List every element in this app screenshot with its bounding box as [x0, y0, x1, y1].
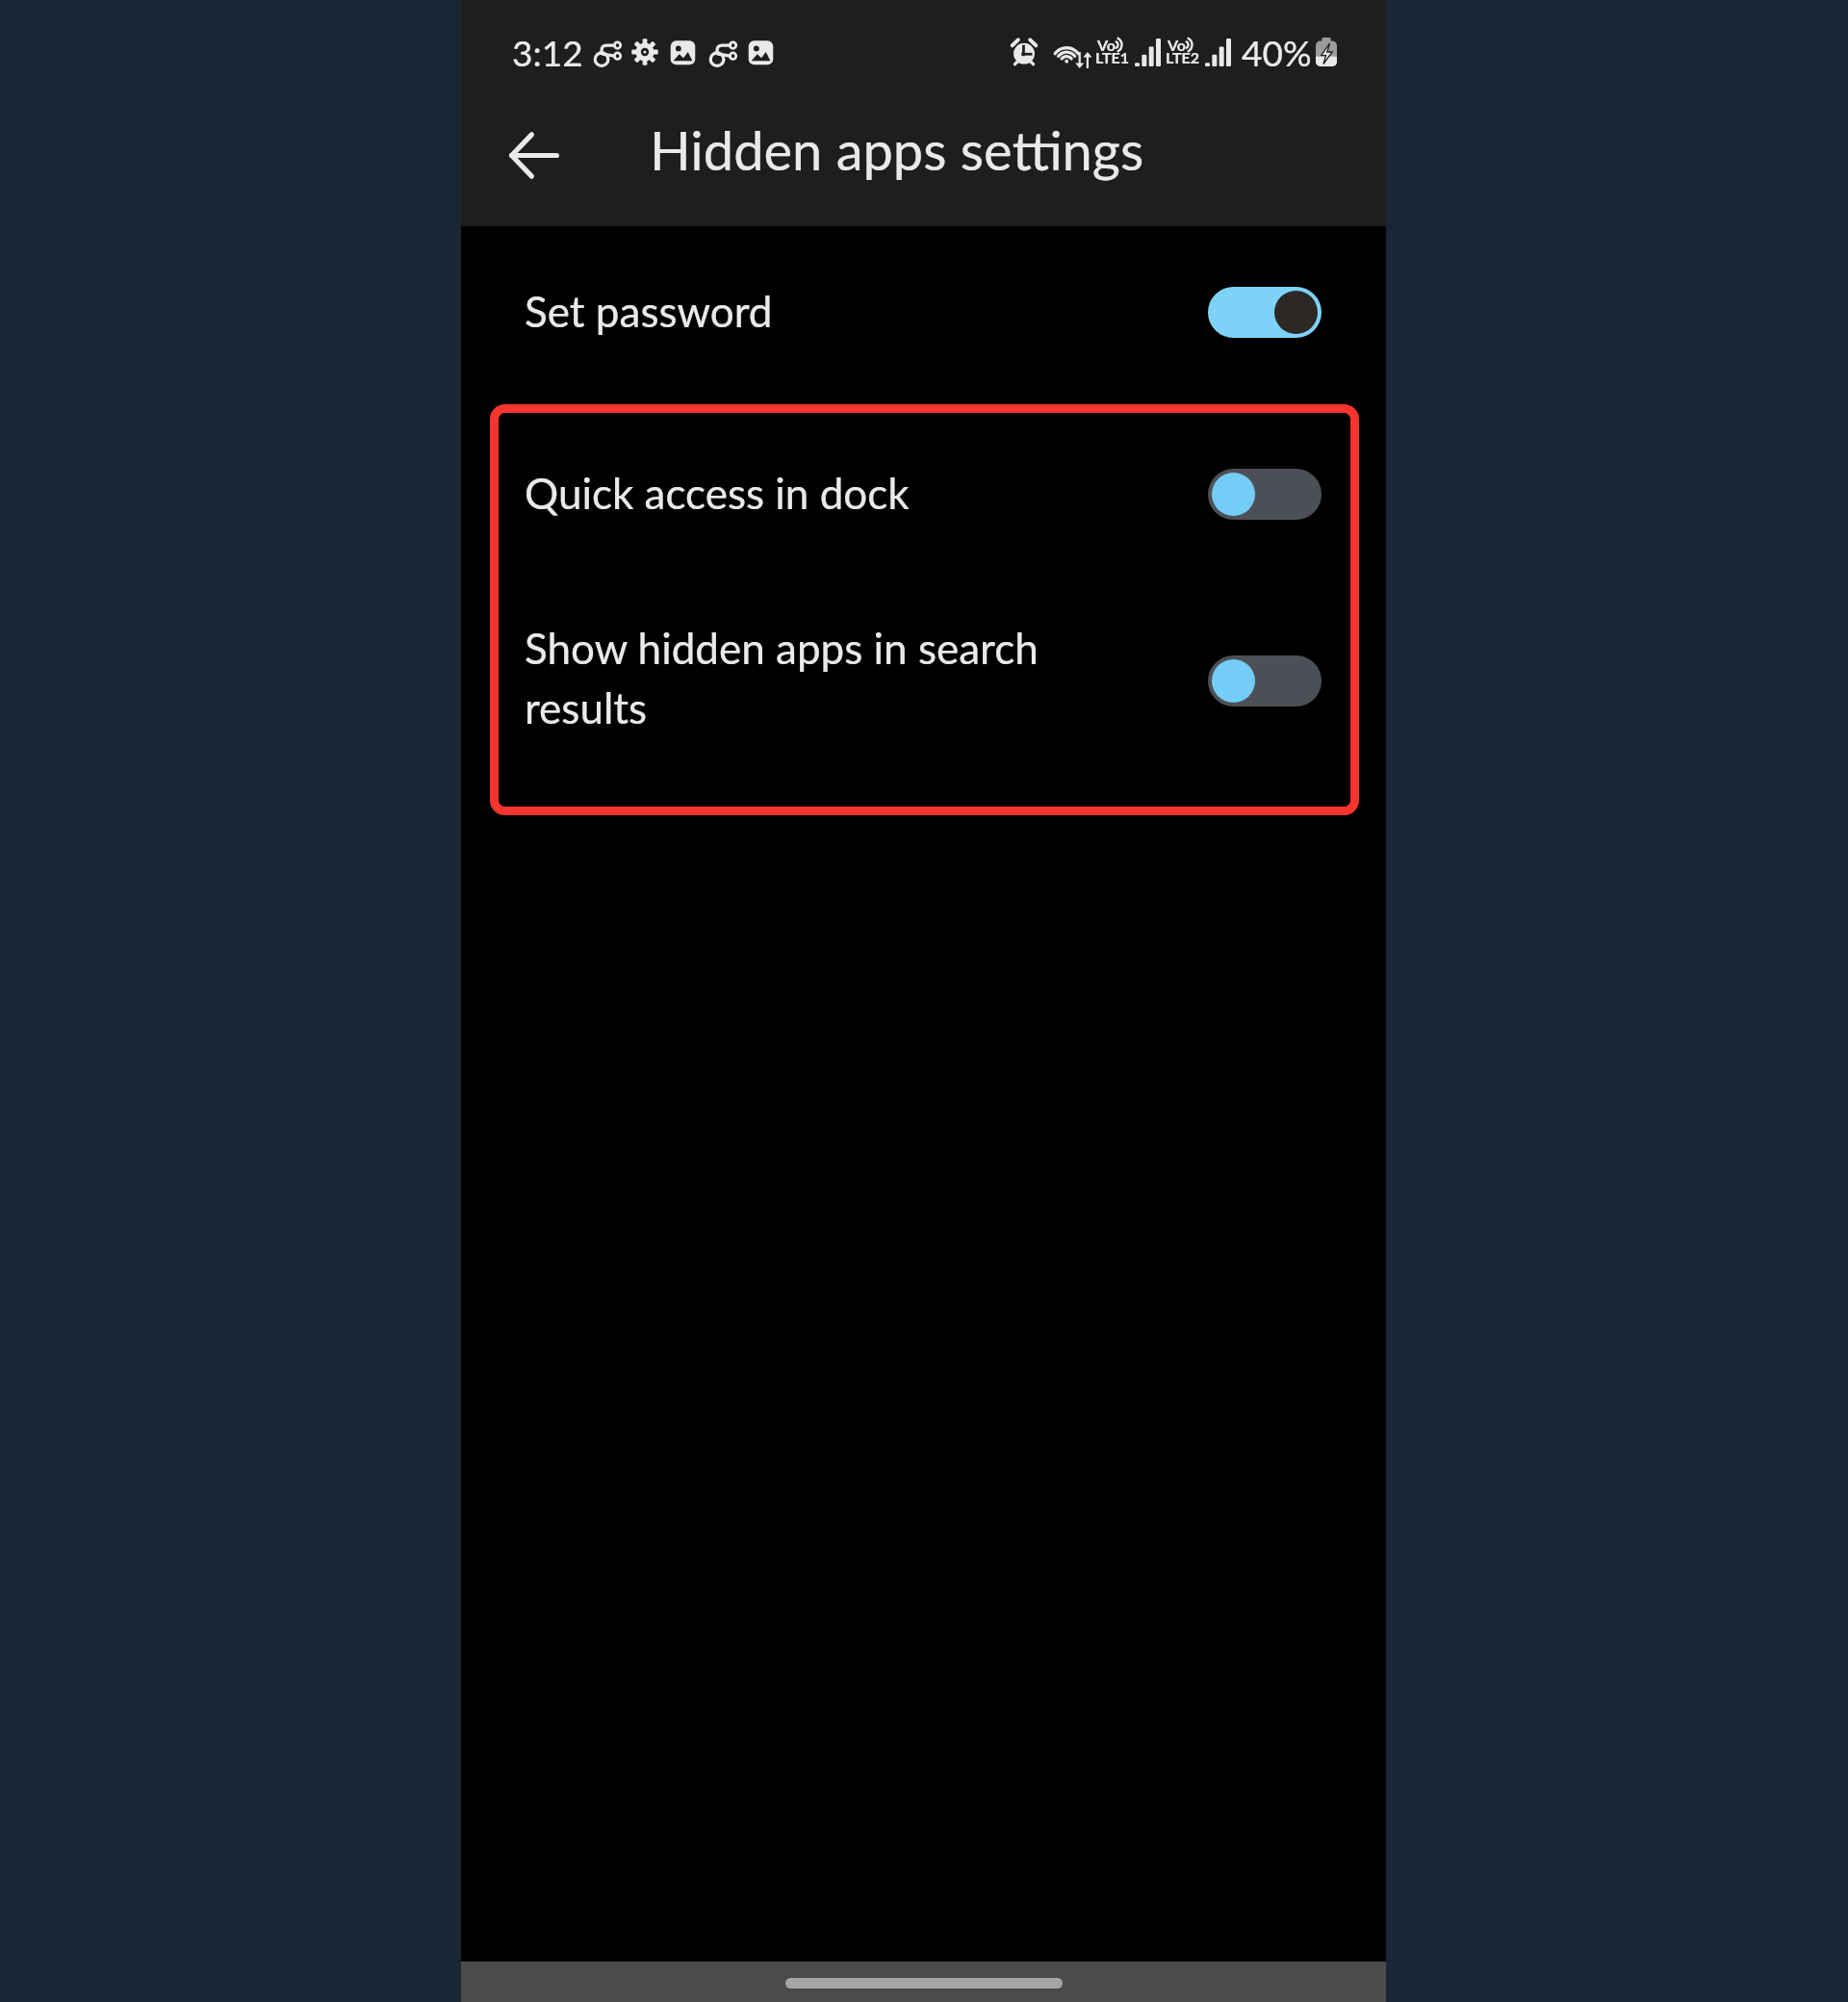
staticText: 3:12: [512, 31, 583, 73]
button[interactable]: Off: [1208, 655, 1322, 706]
staticText: 40%: [1242, 31, 1312, 73]
button[interactable]: Set password: [461, 254, 1386, 370]
staticText: Show hidden apps in search: [525, 623, 1039, 674]
button[interactable]: Show hidden apps in search: [461, 586, 1386, 759]
staticText: LTE1: [1095, 48, 1129, 66]
button[interactable]: Hidden apps settings: [634, 106, 1173, 194]
button[interactable]: Quick access in dock: [461, 436, 1386, 552]
staticText: Set password: [525, 286, 773, 337]
button[interactable]: On: [1208, 287, 1322, 338]
staticText: Vo: [1097, 36, 1116, 54]
staticText: Quick access in dock: [525, 468, 910, 519]
staticText: Hidden apps settings: [650, 117, 1144, 182]
staticText: results: [525, 682, 648, 733]
staticText: LTE2: [1166, 48, 1199, 66]
button[interactable]: Back: [490, 111, 578, 199]
staticText: Vo: [1168, 36, 1187, 54]
button[interactable]: Off: [1208, 469, 1322, 520]
